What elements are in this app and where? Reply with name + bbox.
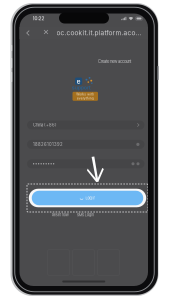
staticText: 10:22: [32, 16, 44, 21]
staticText: Works with: [76, 92, 94, 96]
staticText: China (+86): [33, 122, 57, 127]
staticText: oc.cookit.it.platform.aco...: [56, 29, 141, 37]
staticText: Log in: [85, 196, 95, 200]
button[interactable]: Close: [41, 28, 50, 38]
staticText: 18826101392: [33, 142, 63, 147]
button[interactable]: Log in: [27, 184, 148, 212]
button[interactable]: SMS Login: [77, 212, 94, 217]
staticText: Reset now: [52, 213, 69, 217]
staticText: SMS Login: [77, 212, 94, 217]
staticText: e: [77, 77, 81, 85]
button[interactable]: Create new account: [98, 59, 131, 64]
button[interactable]: Reset now: [52, 213, 69, 217]
staticText: everything: [77, 96, 94, 100]
staticText: support: [72, 84, 91, 91]
button[interactable]: Back: [23, 28, 32, 38]
staticText: Create new account: [98, 59, 131, 64]
